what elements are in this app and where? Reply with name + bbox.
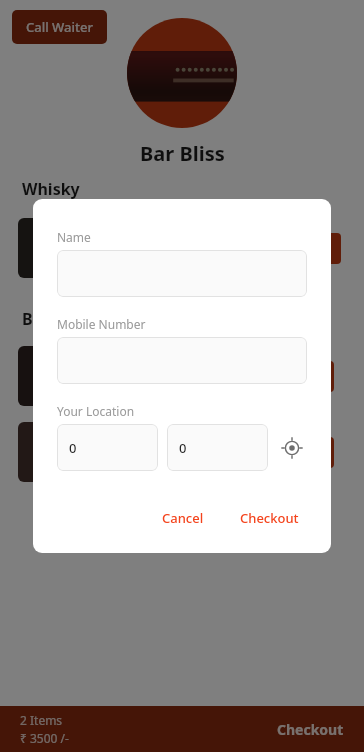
button[interactable]: 0 bbox=[57, 424, 158, 471]
button[interactable]: Courvoisier 700ml bbox=[0, 414, 364, 490]
staticText: 2 Items bbox=[20, 712, 63, 728]
staticText: Name bbox=[57, 229, 91, 245]
staticText: ₹9000 bbox=[214, 367, 252, 385]
staticText: Whisky bbox=[22, 178, 80, 200]
staticText: Call Waiter bbox=[26, 18, 93, 36]
button[interactable]: – bbox=[258, 361, 334, 392]
button[interactable]: Cancel bbox=[154, 501, 212, 535]
staticText: Bar Bliss bbox=[140, 140, 225, 167]
staticText: + bbox=[323, 239, 332, 258]
staticText: ₹12000 bbox=[214, 239, 259, 257]
button[interactable]: 2 Items bbox=[0, 706, 364, 752]
staticText: ADD bbox=[282, 445, 308, 461]
staticText: Mobile Number bbox=[57, 316, 146, 332]
button[interactable]: Use my current location bbox=[276, 431, 307, 465]
staticText: 0 bbox=[179, 439, 187, 457]
staticText: Hennessy 700ml bbox=[114, 357, 210, 395]
staticText: – bbox=[274, 239, 281, 258]
staticText: Courvoisier 700ml bbox=[114, 433, 210, 471]
staticText: Checkout bbox=[277, 720, 344, 739]
button[interactable]: – bbox=[265, 233, 341, 264]
staticText: Cancel bbox=[162, 509, 204, 527]
staticText: Checkout bbox=[240, 509, 299, 527]
staticText: Brandy bbox=[22, 308, 79, 330]
staticText: Your Location bbox=[57, 403, 135, 419]
staticText: 0 bbox=[69, 439, 77, 457]
staticText: – bbox=[267, 367, 274, 386]
staticText: ADD bbox=[289, 241, 315, 257]
button[interactable]: Call Waiter bbox=[12, 10, 107, 44]
button[interactable]: Hennessy 700ml bbox=[0, 338, 364, 414]
staticText: ADD bbox=[282, 369, 308, 385]
staticText: ₹ 3500 /- bbox=[20, 730, 69, 746]
button[interactable]: Blue Label 750ml bbox=[0, 210, 364, 286]
button[interactable]: 0 bbox=[167, 424, 268, 471]
button[interactable]: – bbox=[258, 437, 334, 468]
staticText: Blue Label 750ml bbox=[114, 229, 210, 267]
button[interactable] bbox=[57, 337, 307, 384]
staticText: – bbox=[267, 443, 274, 462]
button[interactable]: Checkout bbox=[232, 501, 307, 535]
button[interactable] bbox=[57, 250, 307, 297]
